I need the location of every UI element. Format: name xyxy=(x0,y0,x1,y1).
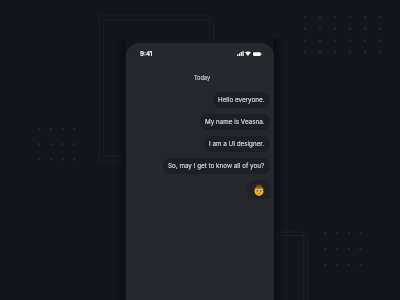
staticText: So, may I get to know all of you? xyxy=(168,162,265,170)
button[interactable]: Profile avatar xyxy=(247,180,271,199)
staticText: My name is Veasna. xyxy=(205,118,265,126)
button[interactable]: I am a UI designer. xyxy=(204,136,270,152)
button[interactable]: So, may I get to know all of you? xyxy=(163,158,270,174)
button[interactable]: Hello everyone. xyxy=(213,92,270,108)
staticText: Hello everyone. xyxy=(218,96,265,104)
button[interactable]: My name is Veasna. xyxy=(200,114,270,130)
staticText: I am a UI designer. xyxy=(209,140,265,148)
staticText: Today xyxy=(128,75,274,82)
staticText: 9:41 xyxy=(140,50,153,58)
